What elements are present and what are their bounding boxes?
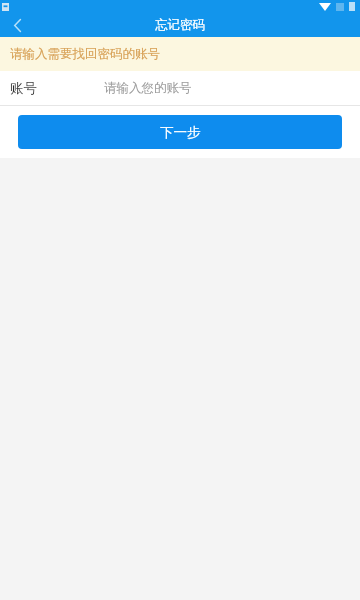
button[interactable]: Back (0, 13, 34, 37)
staticText: 请输入需要找回密码的账号 (10, 46, 160, 62)
button[interactable]: 账号 (0, 71, 360, 105)
staticText: 忘记密码 (155, 17, 205, 33)
staticText: 请输入您的账号 (104, 80, 192, 96)
staticText: 下一步 (160, 124, 201, 141)
staticText: 账号 (10, 80, 37, 97)
button[interactable]: 下一步 (18, 115, 342, 149)
